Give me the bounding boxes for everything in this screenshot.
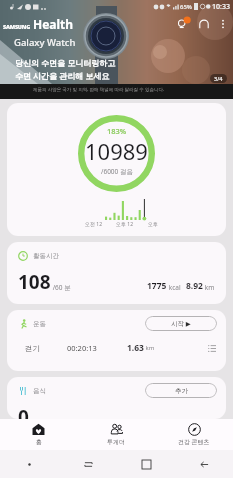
staticText: 3/4 [214,75,223,82]
staticText: /6000 걸음 [101,167,133,176]
staticText: 108 [18,269,51,295]
button[interactable]: Back [175,450,233,478]
staticText: 오후 [148,221,158,227]
staticText: 음식 [33,387,46,395]
staticText: 183% [107,126,127,136]
staticText: 1.63 [127,342,144,354]
staticText: 홈 [36,438,42,446]
staticText: 오후 12 [116,221,134,228]
staticText: 65% [180,3,192,11]
staticText: 건강 콘텐츠 [178,438,210,446]
button[interactable]: Tips [175,16,191,32]
button[interactable]: Home [117,450,175,478]
staticText: SAMSUNG [3,23,31,30]
staticText: 00:20:13 [67,343,97,353]
staticText: kcal [167,283,181,292]
staticText: 제품의 사양은 국가 및 지역, 판매 채널에 따라 달라질 수 있습니다. [33,86,165,92]
staticText: 걷기 [25,344,40,353]
button[interactable]: Details [208,344,217,353]
button[interactable]: 시작 ▶ [145,316,217,331]
button[interactable]: 운동 [7,310,226,371]
staticText: 10989 [85,136,148,166]
staticText: 활동시간 [33,252,59,260]
button[interactable]: 건강 콘텐츠 [155,419,233,450]
staticText: 추가 [175,387,188,395]
button[interactable]: 홈 [0,419,77,450]
staticText: 오전 12 [85,221,103,228]
staticText: 1775 [147,280,167,292]
staticText: 10:33 [212,2,230,12]
button[interactable]: 음식 [7,377,226,419]
staticText: 운동 [33,320,46,328]
button[interactable]: 183% [7,103,226,236]
staticText: Galaxy Watch [14,36,76,49]
staticText: 수면 시간을 관리해 보세요 [15,70,110,81]
staticText: 시작 ▶ [171,319,191,328]
staticText: km [144,344,155,352]
button[interactable]: 투게더 [77,419,155,450]
button[interactable]: Recent apps [59,450,117,478]
staticText: 당신의 수면을 모니터링하고 [15,57,116,68]
staticText: km [203,283,215,292]
button[interactable]: 추가 [145,383,217,398]
staticText: 투게더 [107,438,125,446]
button[interactable]: Profile [197,17,211,31]
button[interactable]: More options [217,18,229,30]
staticText: Health [33,16,74,32]
staticText: 0 [18,404,29,419]
button[interactable]: Assistant [0,450,59,478]
staticText: /60 분 [51,283,71,292]
staticText: 8.92 [186,280,203,292]
button[interactable]: 활동시간 [7,242,226,304]
